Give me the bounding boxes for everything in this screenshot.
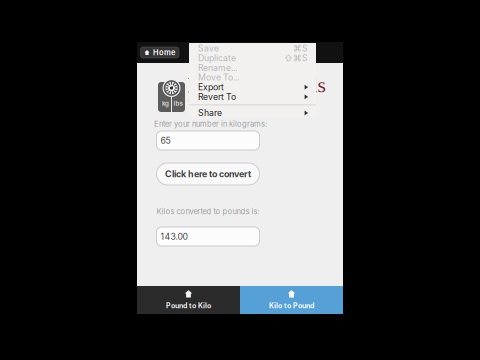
staticText: Duplicate	[198, 53, 236, 63]
button[interactable]: Click here to convert	[156, 163, 259, 185]
staticText: Pound to Kilo	[166, 301, 211, 310]
staticText: Move To...	[198, 72, 239, 83]
staticText: Save	[198, 43, 219, 54]
staticText: Export	[198, 82, 224, 92]
staticText: Share	[198, 108, 222, 118]
staticText: ⇧⌘S	[284, 53, 308, 63]
staticText: Weight Converter	[187, 97, 292, 113]
button[interactable]: Kilo to Pound	[240, 286, 343, 314]
staticText: Kilo to Pound	[269, 301, 314, 310]
staticText: Revert To	[198, 92, 236, 102]
button[interactable]: Pound to Kilo	[137, 286, 240, 314]
staticText: Enter your number in kilograms:	[154, 119, 267, 129]
staticText: Home	[153, 48, 175, 57]
staticText: Rename...	[198, 62, 237, 73]
staticText: kg	[162, 100, 169, 107]
staticText: ⌘S	[293, 43, 308, 54]
button[interactable]: Home	[140, 47, 179, 58]
staticText: Kilos to Pounds	[187, 73, 325, 97]
staticText: lbs	[173, 100, 182, 107]
staticText: Click here to convert	[165, 169, 251, 179]
staticText: 143.00	[160, 231, 187, 242]
staticText: Kilos converted to pounds is:	[156, 207, 259, 216]
staticText: 65	[160, 135, 170, 146]
